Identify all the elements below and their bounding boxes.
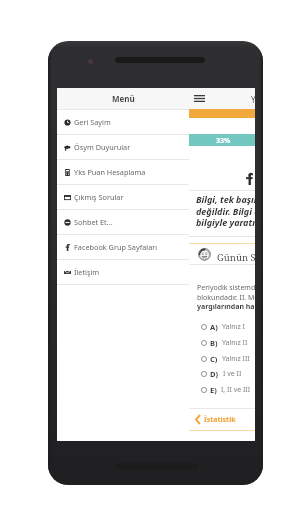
button[interactable]: Geri Sayim [57, 110, 189, 134]
button[interactable]: B) [201, 336, 255, 350]
staticText: Geri Sayim [74, 117, 111, 127]
staticText: blokundadır. II. Metal özelliği [197, 293, 255, 303]
staticText: Ösym Duyurular [74, 142, 131, 152]
staticText: İletişim [74, 267, 100, 277]
button[interactable]: İletişim [57, 260, 189, 284]
button[interactable]: E) [201, 383, 255, 397]
button[interactable]: Yks Puan Hesaplama [57, 160, 189, 184]
staticText: Yalnız III [222, 354, 250, 364]
staticText: Periyodik sistemde I. A grubu [197, 283, 255, 293]
staticText: D) [210, 369, 219, 379]
staticText: bilgiyle yaratılır. [196, 216, 255, 228]
button[interactable]: C) [201, 352, 255, 366]
button[interactable]: Facebook Grup Sayfaları [57, 235, 189, 259]
staticText: I, II ve III [221, 385, 251, 395]
staticText: değildir. Bilgi ancak [196, 205, 255, 217]
staticText: Facebook Grup Sayfaları [74, 242, 158, 252]
button[interactable]: Çıkmış Sorular [57, 185, 189, 209]
staticText: Yalnız I [222, 322, 245, 332]
staticText: Yks Geri Sayim [251, 94, 255, 105]
staticText: yargılarından hangileri doğru [197, 302, 255, 312]
button[interactable]: A) [201, 320, 255, 334]
staticText: Menü [112, 93, 135, 104]
staticText: Çıkmış Sorular [74, 192, 124, 202]
staticText: Yks Puan Hesaplama [74, 167, 146, 177]
staticText: Bilgi, tek başına yeterli [196, 193, 255, 205]
staticText: E) [210, 385, 217, 395]
staticText: Yalnız II [222, 338, 248, 348]
button[interactable]: Sohbet Et... [57, 210, 189, 234]
staticText: I ve II [223, 369, 242, 379]
staticText: B) [210, 338, 218, 348]
staticText: A) [210, 322, 218, 332]
button[interactable]: Open navigation menu [186, 88, 212, 109]
staticText: C) [210, 354, 218, 364]
button[interactable]: İstatistik [195, 409, 255, 430]
staticText: İstatistik [204, 415, 236, 425]
staticText: 33% [216, 136, 231, 146]
staticText: Sohbet Et... [74, 217, 113, 227]
button[interactable]: D) [201, 367, 255, 381]
button[interactable]: Ösym Duyurular [57, 135, 189, 159]
staticText: Günün Sorusu [217, 251, 255, 264]
